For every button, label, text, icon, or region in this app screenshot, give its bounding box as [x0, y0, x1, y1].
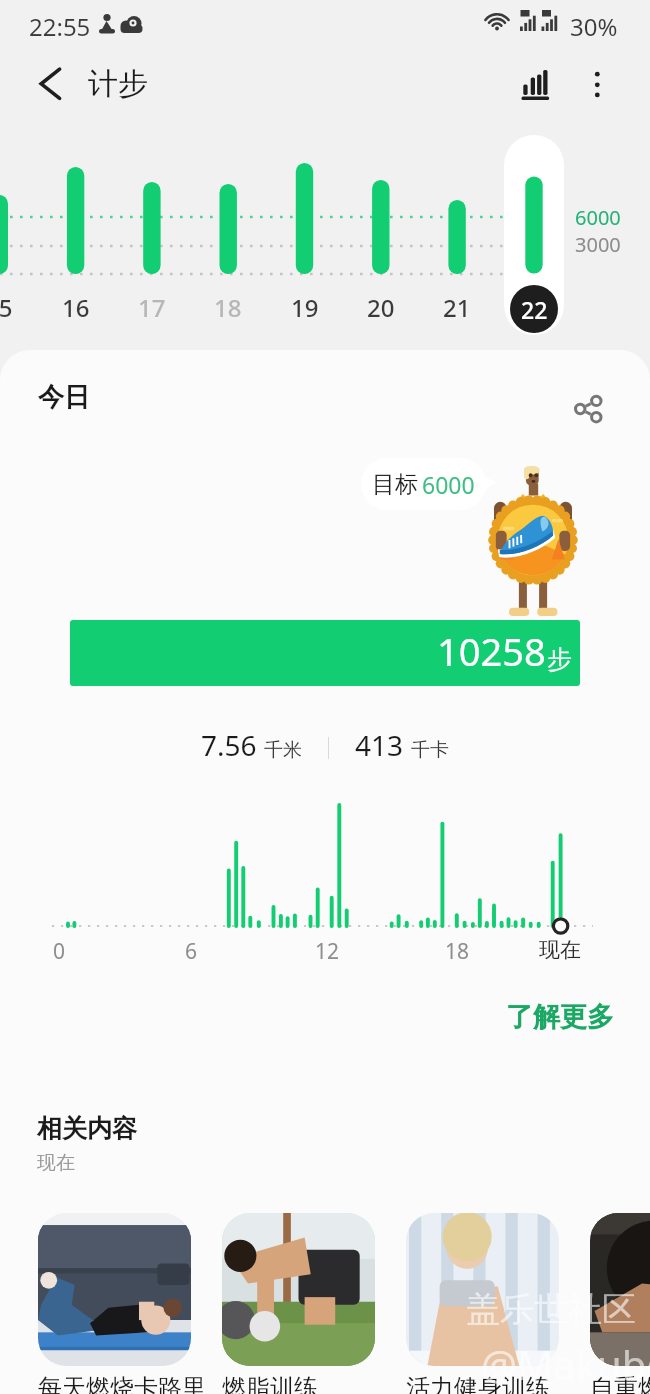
staticText: 21	[443, 291, 471, 324]
button[interactable]: 21	[427, 140, 487, 330]
staticText: 3000	[575, 231, 621, 258]
staticText: 了解更多	[506, 1000, 614, 1034]
staticText: 0	[53, 937, 66, 966]
button[interactable]: 15	[0, 140, 29, 330]
staticText: 7.56	[201, 726, 257, 764]
staticText: 22:55	[29, 10, 91, 43]
staticText: 18	[214, 291, 242, 324]
button[interactable]: 16	[46, 140, 106, 330]
button[interactable]: 17	[122, 140, 182, 330]
staticText: 30%	[570, 10, 618, 43]
button[interactable]: 了解更多	[494, 992, 626, 1042]
staticText: 千卡	[411, 738, 449, 762]
staticText: 6	[185, 937, 198, 966]
button[interactable]: 每天燃烧卡路里	[38, 1213, 218, 1394]
staticText: 413	[355, 726, 404, 764]
staticText: 每天燃烧卡路里	[38, 1373, 206, 1394]
button[interactable]: 自重燃脂	[590, 1213, 650, 1394]
staticText: 16	[62, 291, 90, 324]
staticText: 17	[138, 291, 166, 324]
staticText: 15	[0, 291, 13, 324]
button[interactable]: More options	[573, 60, 623, 110]
button[interactable]: 19	[275, 140, 335, 330]
button[interactable]: 18	[198, 140, 258, 330]
staticText: @Makubex	[481, 1337, 650, 1391]
staticText: 20	[367, 291, 395, 324]
button[interactable]: Back	[26, 59, 76, 109]
staticText: 现在	[37, 1151, 75, 1175]
button[interactable]: Statistics	[512, 60, 564, 112]
button[interactable]: 10258	[70, 620, 580, 686]
button[interactable]: 燃脂训练	[222, 1213, 402, 1394]
staticText: 10258	[437, 625, 546, 677]
staticText: 目标	[372, 470, 418, 499]
staticText: 今日	[38, 381, 90, 414]
staticText: 相关内容	[37, 1113, 137, 1144]
staticText: 19	[291, 291, 319, 324]
staticText: 盖乐世社区	[466, 1288, 636, 1331]
staticText: 步	[547, 644, 572, 675]
staticText: 自重燃脂	[590, 1373, 650, 1394]
staticText: 6000	[422, 469, 475, 500]
button[interactable]: 活力健身训练	[406, 1213, 586, 1394]
staticText: 6000	[575, 204, 621, 231]
button[interactable]: 22	[504, 135, 564, 335]
staticText: 计步	[88, 65, 148, 103]
button[interactable]: Share	[566, 386, 612, 432]
staticText: 燃脂训练	[222, 1373, 318, 1394]
button[interactable]: 20	[351, 140, 411, 330]
staticText: 现在	[539, 937, 581, 963]
staticText: 18	[445, 937, 470, 966]
staticText: 12	[315, 937, 340, 966]
staticText: 千米	[264, 738, 302, 762]
staticText: 活力健身训练	[406, 1373, 550, 1394]
staticText: 22	[521, 294, 548, 325]
